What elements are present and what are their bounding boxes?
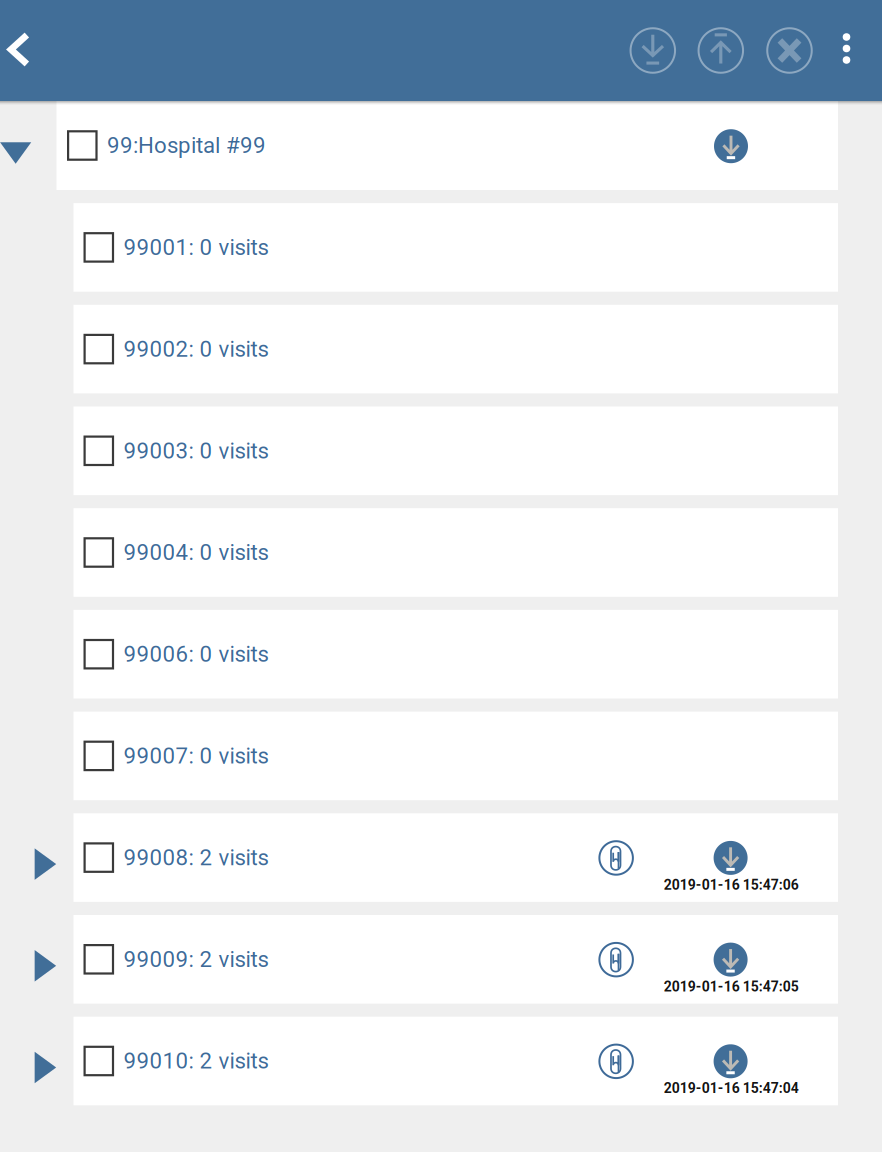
button[interactable]: Expand	[20, 1023, 70, 1112]
button[interactable]: Expand	[20, 820, 70, 908]
staticText: 99010: 2 visits	[123, 1048, 268, 1074]
button[interactable]: 99002: 0 visits	[73, 305, 838, 393]
button[interactable]: 99:Hospital #99	[56, 101, 838, 190]
staticText: 2019-01-16 15:47:04	[664, 1080, 799, 1096]
button[interactable]: Upload	[690, 0, 752, 101]
staticText: 99009: 2 visits	[123, 946, 268, 972]
staticText: 99002: 0 visits	[123, 336, 268, 362]
button[interactable]: 99008: 2 visits	[73, 813, 838, 902]
button[interactable]: 99004: 0 visits	[73, 508, 838, 597]
button[interactable]: 99007: 0 visits	[73, 712, 838, 800]
button[interactable]: 99003: 0 visits	[73, 406, 838, 495]
staticText: 99007: 0 visits	[123, 743, 268, 769]
staticText: 99003: 0 visits	[123, 438, 268, 464]
button[interactable]: 99010: 2 visits	[73, 1017, 838, 1105]
button[interactable]: 99006: 0 visits	[73, 610, 838, 698]
button[interactable]: 99001: 0 visits	[73, 203, 838, 292]
button[interactable]: Collapse	[0, 108, 44, 197]
button[interactable]: Expand	[20, 921, 70, 1010]
staticText: 2019-01-16 15:47:06	[664, 877, 799, 893]
button[interactable]: More options	[824, 0, 868, 99]
button[interactable]: Back	[0, 0, 41, 100]
staticText: 99:Hospital #99	[107, 132, 266, 159]
staticText: 99008: 2 visits	[123, 845, 268, 871]
button[interactable]: Download	[622, 0, 684, 101]
staticText: 99006: 0 visits	[123, 641, 268, 667]
button[interactable]: Cancel	[758, 0, 820, 101]
staticText: 99001: 0 visits	[123, 234, 268, 260]
staticText: 99004: 0 visits	[123, 539, 268, 566]
staticText: 2019-01-16 15:47:05	[664, 978, 799, 995]
button[interactable]: 99009: 2 visits	[73, 915, 838, 1004]
